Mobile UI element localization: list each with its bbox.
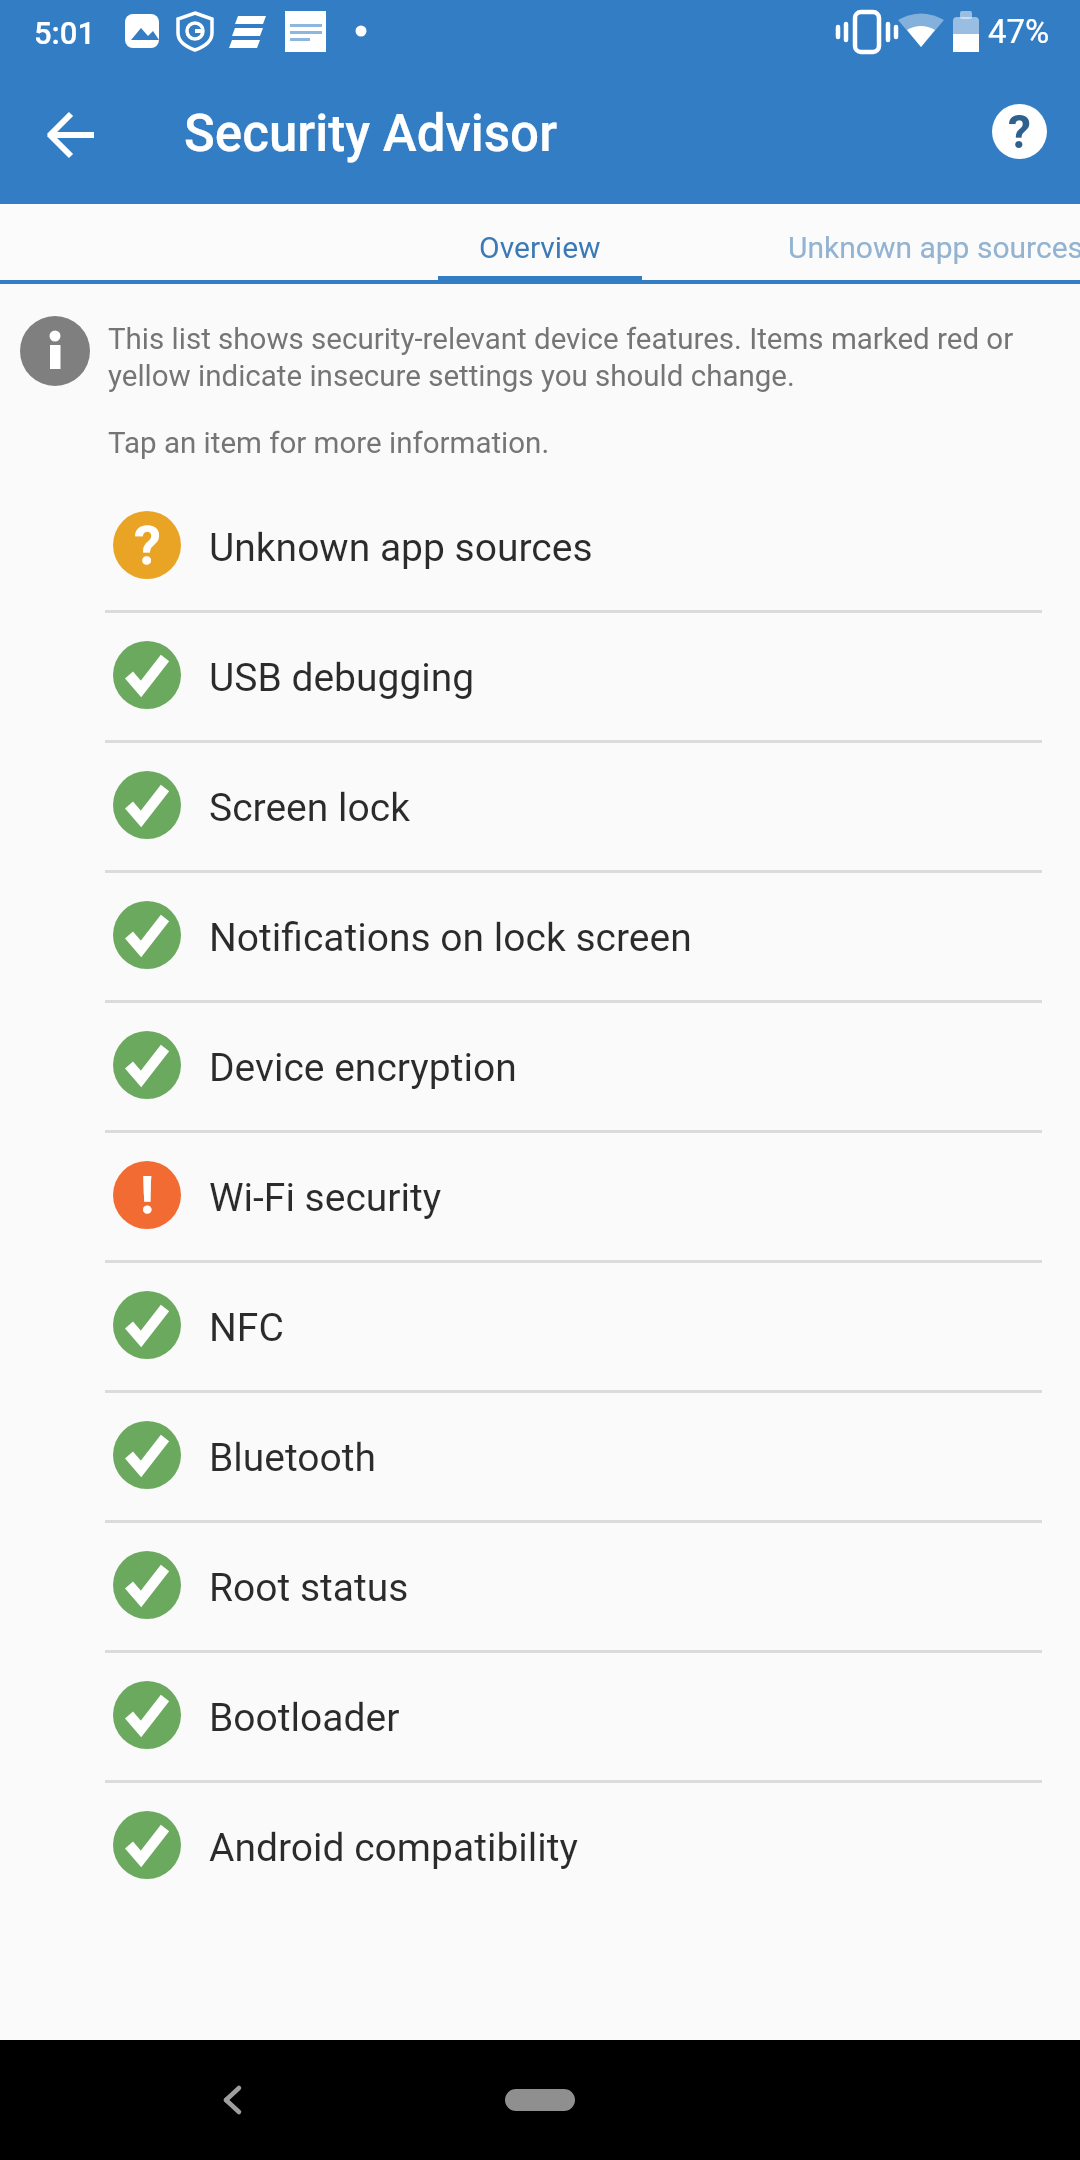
staticText: Notifications on lock screen: [209, 915, 692, 961]
button[interactable]: Bluetooth: [0, 1390, 1080, 1520]
staticText: Device encryption: [209, 1045, 517, 1091]
staticText: USB debugging: [209, 655, 475, 701]
button[interactable]: Overview: [380, 204, 700, 284]
staticText: NFC: [209, 1305, 284, 1351]
staticText: 5:01: [34, 15, 96, 51]
button[interactable]: NFC: [0, 1260, 1080, 1390]
staticText: !: [140, 1165, 155, 1226]
button[interactable]: [505, 2089, 575, 2111]
button[interactable]: [193, 2080, 273, 2120]
staticText: Unknown app sources: [788, 230, 1080, 265]
button[interactable]: Device encryption: [0, 1000, 1080, 1130]
staticText: ?: [134, 514, 161, 577]
staticText: Root status: [209, 1565, 409, 1611]
button[interactable]: Root status: [0, 1520, 1080, 1650]
staticText: Bluetooth: [209, 1435, 377, 1481]
button[interactable]: USB debugging: [0, 610, 1080, 740]
staticText: ?: [1008, 105, 1031, 159]
button[interactable]: Android compatibility: [0, 1780, 1080, 1910]
staticText: Tap an item for more information.: [108, 426, 550, 461]
button[interactable]: Bootloader: [0, 1650, 1080, 1780]
staticText: 47%: [988, 12, 1050, 51]
button[interactable]: [30, 93, 114, 177]
staticText: Overview: [479, 230, 601, 265]
staticText: This list shows security-relevant device…: [108, 322, 1014, 393]
staticText: Android compatibility: [209, 1825, 578, 1871]
button[interactable]: Notifications on lock screen: [0, 870, 1080, 1000]
button[interactable]: ?: [0, 480, 1080, 610]
staticText: Unknown app sources: [209, 525, 593, 571]
button[interactable]: Screen lock: [0, 740, 1080, 870]
staticText: Wi-Fi security: [209, 1175, 442, 1221]
staticText: Bootloader: [209, 1695, 400, 1741]
staticText: Security Advisor: [184, 104, 558, 164]
button[interactable]: !: [0, 1130, 1080, 1260]
staticText: Screen lock: [209, 785, 410, 831]
button[interactable]: Unknown app sources: [700, 204, 1080, 284]
button[interactable]: ?: [978, 90, 1060, 172]
